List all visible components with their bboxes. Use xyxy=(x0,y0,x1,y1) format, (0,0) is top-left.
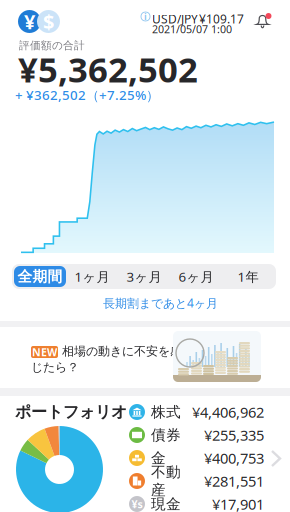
button[interactable]: Notifications xyxy=(256,14,276,34)
staticText: ¥255,335 xyxy=(204,425,264,445)
staticText: ¥400,753 xyxy=(204,448,264,468)
staticText: ¥4,406,962 xyxy=(192,402,264,422)
staticText: 6ヶ月 xyxy=(178,268,213,285)
button[interactable]: 6ヶ月 xyxy=(170,266,222,287)
button[interactable]: 全期間 xyxy=(14,266,66,287)
staticText: 不動産 xyxy=(151,463,181,499)
button[interactable]: NEW xyxy=(0,327,290,388)
staticText: ¥17,901 xyxy=(212,494,264,512)
button[interactable]: 1ヶ月 xyxy=(66,266,118,287)
staticText: 長期割まであと4ヶ月 xyxy=(103,295,218,311)
staticText: 全期間 xyxy=(17,267,62,285)
staticText: 評価額の合計 xyxy=(19,39,85,52)
staticText: ポートフォリオ xyxy=(15,402,127,422)
staticText: 3ヶ月 xyxy=(126,268,161,285)
staticText: i xyxy=(144,10,147,23)
button[interactable]: 1年 xyxy=(222,266,274,287)
staticText: 株式 xyxy=(151,403,181,421)
staticText: 金 xyxy=(151,449,166,467)
staticText: 債券 xyxy=(151,426,181,444)
staticText: USD/JPY xyxy=(152,11,198,27)
staticText: ¥109.17 xyxy=(199,11,244,27)
staticText: + ¥362,502（+7.25%） xyxy=(15,86,159,104)
staticText: 1年 xyxy=(237,268,258,285)
button[interactable]: 3ヶ月 xyxy=(118,266,170,287)
staticText: じたら？ xyxy=(31,360,79,375)
staticText: NEW xyxy=(32,345,57,359)
staticText: 1ヶ月 xyxy=(74,268,109,285)
staticText: ¥281,551 xyxy=(204,471,264,491)
staticText: ¥s xyxy=(131,497,142,511)
staticText: ¥ xyxy=(24,8,35,35)
staticText: 現金 xyxy=(151,495,181,512)
staticText: $ xyxy=(43,8,54,35)
staticText: 2021/05/07 1:00 xyxy=(152,22,232,36)
staticText: 相場の動きに不安を感 xyxy=(62,344,182,359)
button[interactable]: Currency toggle xyxy=(18,10,60,33)
staticText: ¥5,362,502 xyxy=(18,46,198,92)
